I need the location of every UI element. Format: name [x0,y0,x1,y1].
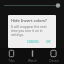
staticText: CANCEL [27,40,40,44]
button[interactable]: CANCEL [25,39,42,45]
button[interactable]: Watch [22,48,43,64]
staticText: Tiles [8,59,15,63]
staticText: Device [49,59,59,63]
staticText: Watch [28,59,37,63]
button[interactable]: Tiles [0,48,22,64]
button[interactable]: Device [43,48,64,64]
staticText: It will reappear the next time you turn … [11,25,53,37]
staticText: Hide Invert colors? [11,18,47,23]
button[interactable]: OK [44,39,53,45]
staticText: OK [46,40,51,44]
button[interactable]: Brightness slider [0,0,64,10]
